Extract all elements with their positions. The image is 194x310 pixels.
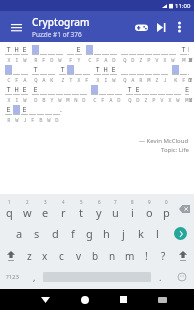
button[interactable]: Y (48, 85, 55, 103)
button[interactable]: K (172, 65, 179, 83)
button[interactable]: Shift (172, 245, 194, 267)
button[interactable]: E (21, 45, 28, 63)
button[interactable]: 8 (124, 197, 141, 221)
button[interactable]: A (21, 65, 28, 83)
button[interactable]: T (94, 65, 101, 83)
button[interactable]: F (94, 45, 101, 63)
button[interactable]: j (115, 221, 132, 245)
button[interactable]: D (115, 85, 122, 103)
button[interactable]: Z (142, 85, 149, 103)
button[interactable]: E (185, 85, 189, 103)
button[interactable]: E (134, 85, 141, 103)
button[interactable]: E (32, 85, 39, 103)
button[interactable]: A (102, 45, 109, 63)
button[interactable]: More options (170, 18, 188, 36)
button[interactable]: X (161, 45, 168, 63)
button[interactable]: c (53, 245, 70, 267)
button[interactable]: C (91, 85, 98, 103)
button[interactable]: Z (137, 45, 144, 63)
button[interactable]: x (37, 245, 53, 267)
button[interactable]: Open navigation drawer (6, 17, 26, 37)
button[interactable]: D (53, 105, 60, 123)
button[interactable]: z (21, 245, 37, 267)
button[interactable]: F (67, 45, 74, 63)
button[interactable]: C (86, 45, 93, 63)
button[interactable]: E (21, 85, 28, 103)
button[interactable]: Home (65, 289, 104, 310)
button[interactable]: D (48, 45, 55, 63)
button[interactable]: Backspace (175, 197, 194, 221)
button[interactable]: E (188, 45, 189, 63)
button[interactable]: n (104, 245, 121, 267)
button[interactable]: Z (153, 65, 160, 83)
button[interactable]: M (145, 65, 152, 83)
button[interactable]: g (81, 221, 98, 245)
button[interactable]: Switch keyboard (143, 289, 182, 310)
button[interactable]: 0 (158, 197, 175, 221)
button[interactable]: W (13, 105, 20, 123)
button[interactable]: C (5, 65, 12, 83)
button[interactable]: W (169, 45, 176, 63)
button[interactable]: A (40, 65, 47, 83)
button[interactable]: T (59, 65, 66, 83)
button[interactable]: 9 (141, 197, 158, 221)
button[interactable]: a (10, 221, 28, 245)
button[interactable]: Next puzzle (152, 18, 170, 36)
button[interactable]: 6 (90, 197, 107, 221)
button[interactable]: Emoji (169, 267, 194, 287)
button[interactable]: ?123 (0, 267, 25, 287)
button[interactable]: V (153, 45, 160, 63)
button[interactable]: W (56, 85, 63, 103)
button[interactable]: W (174, 85, 181, 103)
button[interactable]: B (40, 85, 47, 103)
button[interactable]: T (5, 45, 12, 63)
button[interactable]: . (151, 267, 169, 287)
button[interactable]: H (102, 65, 109, 83)
button[interactable]: m (121, 245, 138, 267)
button[interactable]: v (70, 245, 87, 267)
button[interactable]: Shift (0, 245, 21, 267)
button[interactable]: E (21, 105, 28, 123)
button[interactable]: T (32, 65, 39, 83)
button[interactable]: 2 (18, 197, 36, 221)
button[interactable]: W (45, 105, 52, 123)
button[interactable]: Game controller (130, 16, 152, 38)
button[interactable]: D (129, 45, 136, 63)
button[interactable]: K (48, 65, 55, 83)
button[interactable]: B (37, 105, 44, 123)
button[interactable]: F (99, 85, 106, 103)
button[interactable]: X (166, 85, 173, 103)
button[interactable]: h (98, 221, 115, 245)
button[interactable]: d (46, 221, 64, 245)
button[interactable]: P (145, 45, 152, 63)
button[interactable]: F (13, 65, 20, 83)
button[interactable]: R (32, 45, 39, 63)
button[interactable]: T (180, 45, 187, 63)
button[interactable]: A (107, 85, 114, 103)
button[interactable]: k (132, 221, 149, 245)
button[interactable]: 4 (54, 197, 72, 221)
button[interactable]: b (87, 245, 104, 267)
button[interactable]: R (137, 65, 144, 83)
button[interactable]: 3 (36, 197, 54, 221)
button[interactable]: Q (121, 65, 128, 83)
button[interactable]: X (75, 65, 82, 83)
button[interactable]: 1 (0, 197, 18, 221)
button[interactable]: Back (26, 289, 65, 310)
button[interactable]: F (83, 65, 90, 83)
button[interactable]: F (29, 105, 36, 123)
button[interactable]: W (56, 45, 63, 63)
button[interactable]: T (5, 85, 12, 103)
button[interactable]: D (188, 65, 189, 83)
button[interactable]: A (129, 65, 136, 83)
button[interactable]: , (25, 267, 43, 287)
button[interactable]: J (161, 65, 168, 83)
button[interactable]: D (80, 85, 87, 103)
button[interactable]: V (158, 85, 165, 103)
button[interactable]: Enter (166, 221, 194, 245)
button[interactable]: f (64, 221, 81, 245)
button[interactable]: N (72, 85, 79, 103)
button[interactable]: Q (121, 45, 128, 63)
button[interactable]: T (126, 85, 133, 103)
